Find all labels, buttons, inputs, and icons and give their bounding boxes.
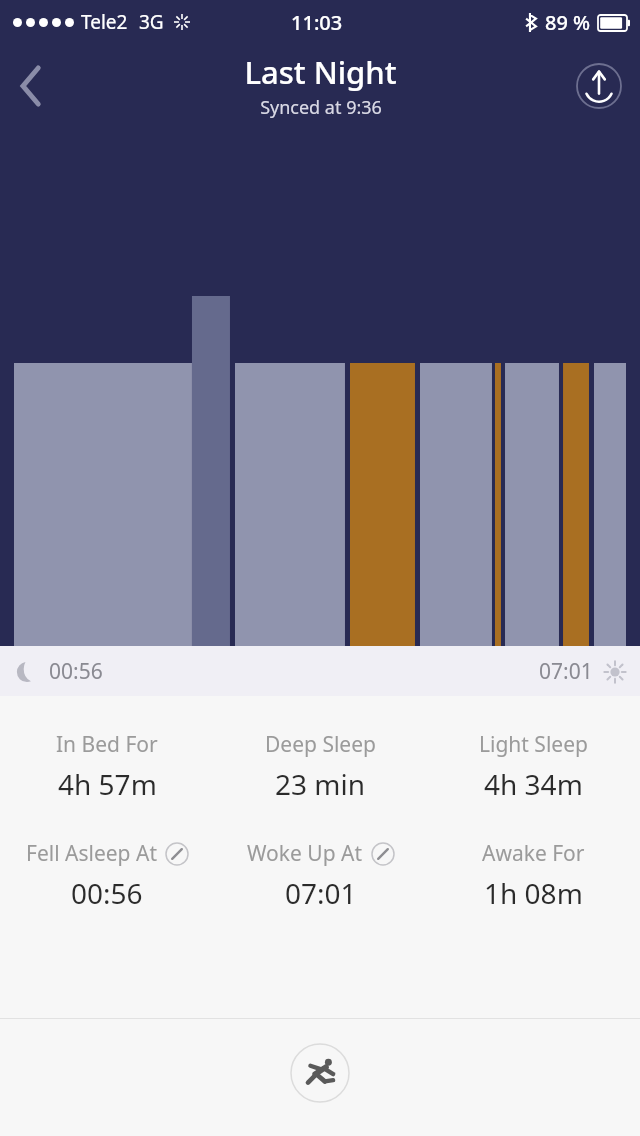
staticText: 00:56	[71, 874, 143, 912]
staticText: 07:01	[285, 874, 357, 912]
staticText: Tele2	[81, 9, 128, 35]
button[interactable]: Activity	[290, 1043, 350, 1103]
staticText: Last Night	[244, 51, 397, 93]
other: Edit Woke Up At	[371, 842, 395, 866]
staticText: 11:03	[291, 9, 343, 36]
staticText: Awake For	[482, 839, 585, 868]
staticText: Synced at 9:36	[260, 95, 382, 120]
staticText: In Bed For	[56, 730, 158, 759]
button[interactable]: Back	[0, 55, 62, 117]
button[interactable]: Woke Up At	[214, 839, 427, 912]
staticText: 4h 57m	[58, 765, 157, 803]
staticText: Woke Up At	[247, 839, 363, 868]
staticText: Fell Asleep At	[26, 839, 157, 868]
staticText: 1h 08m	[484, 874, 583, 912]
staticText: 23 min	[275, 765, 366, 803]
staticText: Light Sleep	[479, 730, 588, 759]
other: Edit Fell Asleep At	[165, 842, 189, 866]
staticText: 4h 34m	[484, 765, 583, 803]
button[interactable]: Share	[576, 63, 622, 109]
staticText: 00:56	[49, 657, 103, 686]
staticText: 07:01	[539, 657, 593, 686]
staticText: Deep Sleep	[265, 730, 376, 759]
staticText: 89 %	[545, 9, 591, 36]
staticText: 3G	[139, 9, 164, 35]
button[interactable]: Fell Asleep At	[0, 839, 214, 912]
